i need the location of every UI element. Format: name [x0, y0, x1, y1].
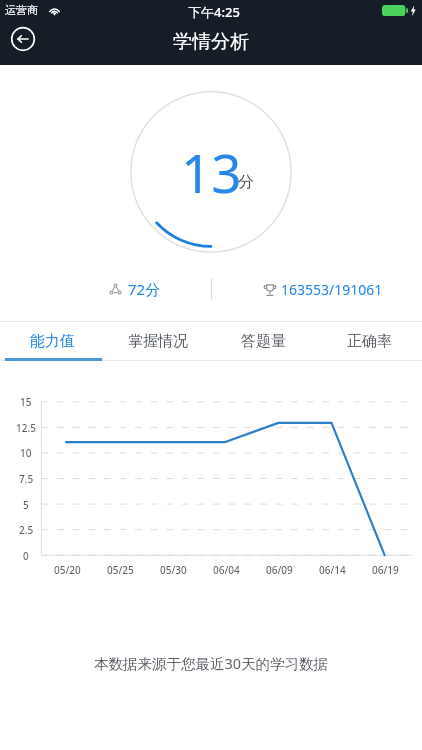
staticText: 学情分析	[173, 30, 249, 54]
staticText: 答题量	[241, 332, 286, 351]
staticText: 06/14	[319, 563, 346, 577]
staticText: 15	[20, 395, 32, 409]
button[interactable]: 能力值	[0, 322, 105, 361]
staticText: 13	[181, 136, 242, 208]
staticText: 05/20	[54, 563, 81, 577]
staticText: 7.5	[19, 472, 34, 486]
staticText: 本数据来源于您最近30天的学习数据	[0, 653, 422, 673]
staticText: 72分	[128, 279, 161, 299]
button[interactable]: 答题量	[210, 322, 316, 361]
staticText: 正确率	[347, 332, 392, 351]
button[interactable]: 72分	[109, 279, 161, 299]
staticText: 06/09	[266, 563, 293, 577]
staticText: 下午4:25	[188, 3, 240, 21]
staticText: 5	[23, 498, 29, 512]
staticText: 0	[23, 549, 29, 563]
staticText: 05/25	[107, 563, 134, 577]
button[interactable]: 掌握情况	[105, 322, 210, 361]
button[interactable]: Back	[6, 22, 40, 56]
staticText: 运营商	[5, 3, 38, 17]
staticText: 06/04	[213, 563, 240, 577]
button[interactable]: 正确率	[316, 322, 422, 361]
staticText: 163553/191061	[281, 280, 383, 299]
staticText: 能力值	[30, 332, 75, 351]
staticText: 掌握情况	[128, 332, 188, 351]
staticText: 10	[20, 446, 32, 460]
staticText: 06/19	[372, 563, 399, 577]
staticText: 2.5	[19, 523, 34, 537]
staticText: 分	[238, 172, 254, 192]
staticText: 05/30	[160, 563, 187, 577]
button[interactable]: 163553/191061	[264, 280, 383, 299]
staticText: 12.5	[16, 421, 36, 435]
